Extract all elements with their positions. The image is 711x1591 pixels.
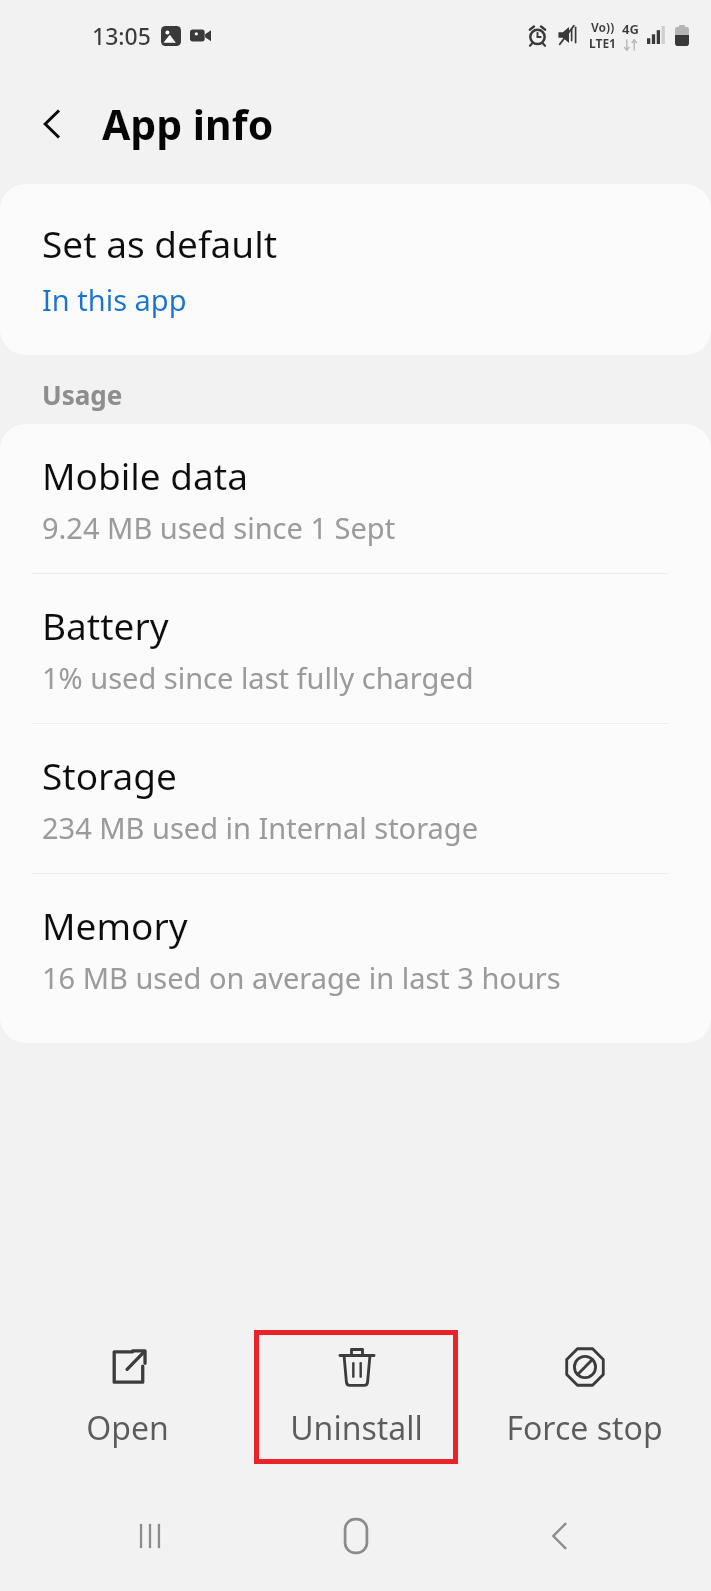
staticText: Usage — [42, 377, 123, 412]
button[interactable]: Memory — [0, 874, 711, 1023]
button[interactable]: Storage — [0, 724, 711, 873]
button[interactable]: Force stop — [482, 1330, 686, 1464]
staticText: Storage — [42, 750, 177, 800]
staticText: Set as default — [42, 218, 278, 268]
staticText: Vo)) — [591, 19, 615, 35]
staticText: In this app — [42, 280, 187, 319]
staticText: Mobile data — [42, 450, 248, 500]
button[interactable]: Recent apps — [95, 1481, 205, 1591]
staticText: Memory — [42, 900, 188, 950]
button[interactable]: Mobile data — [0, 424, 711, 573]
staticText: 4G — [622, 20, 639, 38]
button[interactable]: Battery — [0, 574, 711, 723]
button[interactable]: Back — [22, 93, 84, 155]
button[interactable]: Uninstall — [254, 1330, 458, 1464]
staticText: 9.24 MB used since 1 Sept — [42, 508, 396, 547]
staticText: Force stop — [506, 1406, 663, 1450]
button[interactable]: Set as default — [0, 184, 711, 355]
button[interactable]: Back — [506, 1481, 616, 1591]
button[interactable]: Home — [301, 1481, 411, 1591]
staticText: LTE1 — [589, 35, 616, 51]
staticText: Open — [86, 1406, 169, 1450]
staticText: App info — [102, 96, 274, 152]
staticText: 16 MB used on average in last 3 hours — [42, 958, 561, 997]
staticText: Uninstall — [290, 1406, 423, 1450]
staticText: 13:05 — [92, 20, 151, 51]
staticText: Battery — [42, 600, 169, 650]
staticText: 1% used since last fully charged — [42, 658, 474, 697]
staticText: 234 MB used in Internal storage — [42, 808, 479, 847]
button[interactable]: Open — [25, 1330, 229, 1464]
